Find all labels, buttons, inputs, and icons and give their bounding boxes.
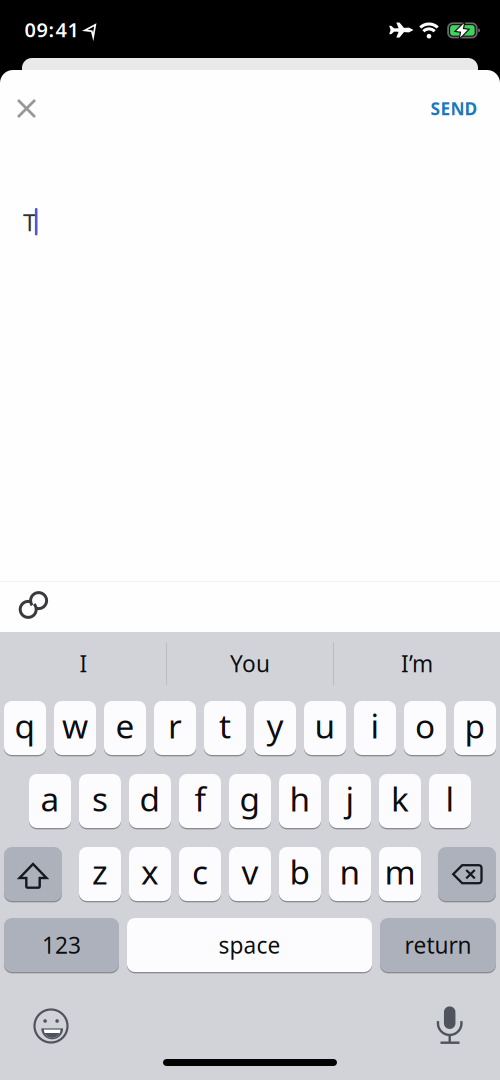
button[interactable]: o [404, 701, 446, 755]
staticText: a [40, 776, 59, 821]
button[interactable]: w [54, 701, 96, 755]
staticText: b [289, 849, 310, 894]
staticText: i [370, 703, 379, 748]
staticText: l [445, 776, 454, 821]
button[interactable]: r [154, 701, 196, 755]
button[interactable]: I’m [342, 638, 492, 688]
staticText: return [404, 930, 471, 960]
staticText: u [314, 703, 335, 748]
staticText: x [141, 849, 159, 894]
staticText: y [266, 703, 283, 748]
button[interactable]: m [379, 847, 421, 901]
button[interactable]: j [329, 774, 371, 828]
staticText: e [115, 703, 134, 748]
staticText: q [14, 703, 35, 748]
staticText: I [79, 648, 87, 678]
staticText: SEND [430, 97, 477, 120]
button[interactable]: n [329, 847, 371, 901]
button[interactable]: You [175, 638, 325, 688]
button[interactable]: b [279, 847, 321, 901]
button[interactable]: Close [12, 94, 40, 122]
staticText: You [230, 648, 270, 678]
staticText: t [219, 703, 231, 748]
staticText: c [192, 849, 208, 894]
staticText: space [218, 930, 280, 960]
button[interactable]: l [429, 774, 471, 828]
button[interactable]: Shift [4, 847, 62, 901]
button[interactable]: k [379, 774, 421, 828]
button[interactable]: h [279, 774, 321, 828]
button[interactable]: g [229, 774, 271, 828]
button[interactable]: v [229, 847, 271, 901]
button[interactable]: q [4, 701, 46, 755]
staticText: p [464, 703, 485, 748]
staticText: k [391, 776, 409, 821]
staticText: o [415, 703, 435, 748]
staticText: j [345, 776, 354, 821]
staticText: d [139, 776, 160, 821]
button[interactable]: SEND [430, 97, 477, 120]
button[interactable]: e [104, 701, 146, 755]
button[interactable]: t [204, 701, 246, 755]
button[interactable]: x [129, 847, 171, 901]
button[interactable]: Emoji [32, 1007, 70, 1045]
button[interactable]: a [29, 774, 71, 828]
button[interactable]: i [354, 701, 396, 755]
staticText: s [92, 776, 108, 821]
staticText: h [289, 776, 310, 821]
button[interactable]: s [79, 774, 121, 828]
button[interactable]: Delete [438, 847, 496, 901]
button[interactable]: y [254, 701, 296, 755]
staticText: T [23, 206, 36, 238]
button[interactable]: p [454, 701, 496, 755]
button[interactable]: 123 [4, 918, 119, 972]
staticText: f [194, 776, 205, 821]
button[interactable]: d [129, 774, 171, 828]
button[interactable]: z [79, 847, 121, 901]
staticText: g [239, 776, 260, 821]
staticText: m [384, 849, 415, 894]
button[interactable]: c [179, 847, 221, 901]
button[interactable]: I [8, 638, 158, 688]
staticText: w [62, 703, 88, 748]
button[interactable]: Attach link [16, 587, 50, 621]
staticText: 123 [42, 930, 81, 960]
staticText: n [339, 849, 360, 894]
button[interactable]: Dictate [435, 1002, 465, 1046]
staticText: v [241, 849, 258, 894]
button[interactable]: return [380, 918, 496, 972]
staticText: r [168, 703, 182, 748]
button[interactable]: space [127, 918, 372, 972]
staticText: z [92, 849, 108, 894]
button[interactable]: f [179, 774, 221, 828]
staticText: 09:41 [24, 16, 78, 43]
staticText: I’m [401, 648, 433, 678]
button[interactable]: u [304, 701, 346, 755]
